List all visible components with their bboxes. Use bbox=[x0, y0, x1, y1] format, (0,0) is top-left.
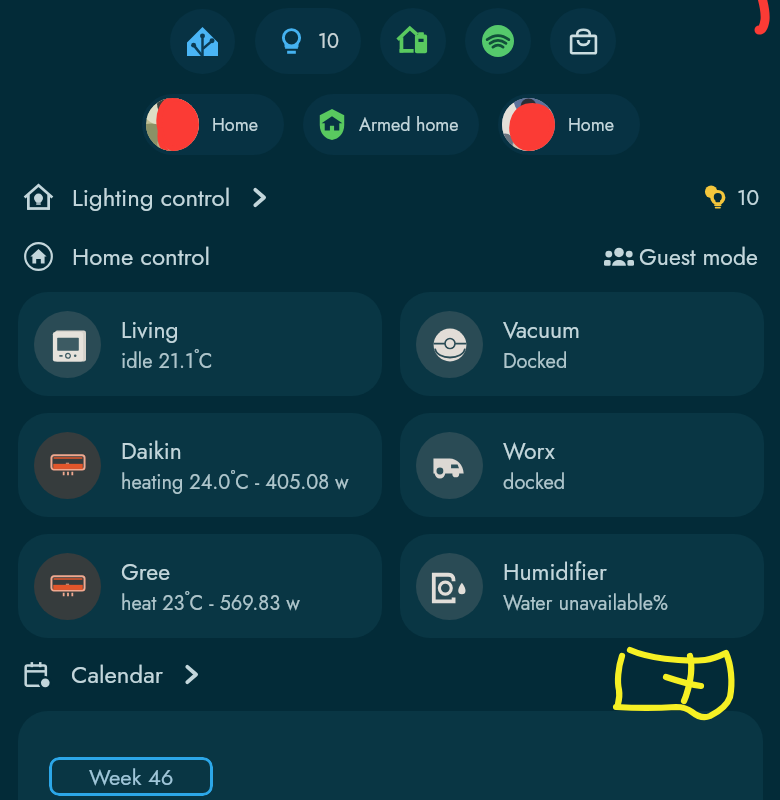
button[interactable]: Week 46 bbox=[49, 757, 213, 796]
button[interactable]: Shopping list bbox=[550, 8, 616, 74]
staticText: heating 24.0˚C - 405.08 w bbox=[121, 468, 349, 497]
staticText: Vacuum bbox=[503, 313, 581, 346]
staticText: Guest mode bbox=[639, 240, 758, 273]
staticText: Home bbox=[568, 112, 615, 138]
staticText: idle 21.1˚C bbox=[121, 347, 213, 376]
button[interactable]: Daikin bbox=[18, 413, 382, 517]
button[interactable]: Home Assistant bbox=[170, 9, 235, 74]
staticText: Worx bbox=[503, 434, 555, 467]
staticText: Home control bbox=[72, 239, 210, 274]
button[interactable]: Home control bbox=[24, 234, 210, 279]
staticText: docked bbox=[503, 468, 566, 497]
staticText: Lighting control bbox=[72, 180, 231, 215]
staticText: Humidifier bbox=[503, 555, 607, 588]
button[interactable]: Home battery bbox=[380, 8, 446, 74]
staticText: heat 23˚C - 569.83 w bbox=[121, 589, 300, 618]
button[interactable]: Humidifier bbox=[400, 534, 764, 638]
button[interactable]: Worx bbox=[400, 413, 764, 517]
button[interactable]: Calendar bbox=[24, 652, 198, 697]
staticText: Gree bbox=[121, 555, 171, 588]
button[interactable]: 10 bbox=[704, 175, 760, 220]
staticText: 10 bbox=[318, 27, 339, 56]
staticText: Calendar bbox=[71, 657, 163, 692]
button[interactable]: Spotify bbox=[465, 8, 531, 74]
staticText: 10 bbox=[737, 183, 760, 213]
button[interactable]: Lighting control bbox=[24, 175, 266, 220]
staticText: Living bbox=[121, 313, 179, 346]
button[interactable]: Home bbox=[498, 94, 640, 155]
button[interactable]: Home bbox=[142, 94, 284, 155]
button[interactable]: Armed home bbox=[303, 94, 479, 155]
button[interactable]: Living bbox=[18, 292, 382, 396]
staticText: Water unavailable% bbox=[503, 589, 669, 618]
button[interactable]: Guest mode bbox=[604, 234, 758, 279]
button[interactable]: Vacuum bbox=[400, 292, 764, 396]
button[interactable]: Gree bbox=[18, 534, 382, 638]
staticText: Docked bbox=[503, 347, 568, 376]
staticText: Home bbox=[212, 112, 259, 138]
staticText: Daikin bbox=[121, 434, 182, 467]
button[interactable]: 10 bbox=[255, 8, 361, 74]
staticText: Week 46 bbox=[89, 761, 174, 793]
staticText: Armed home bbox=[359, 112, 459, 138]
